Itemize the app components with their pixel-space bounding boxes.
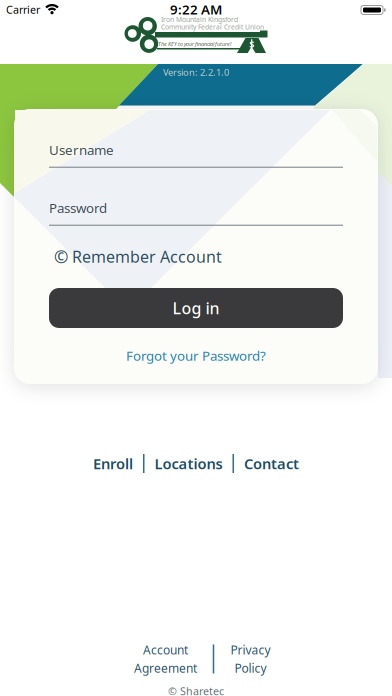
staticText: Iron Mountain Kingsford (161, 15, 238, 24)
button[interactable]: © (54, 245, 222, 268)
staticText: S (249, 38, 254, 50)
button[interactable]: Locations (154, 454, 222, 473)
staticText: Log in (172, 297, 219, 319)
button[interactable]: Account Agreement (134, 642, 197, 676)
staticText: Account Agreement (134, 642, 197, 676)
staticText: Locations (154, 454, 222, 473)
staticText: Community Federal Credit Union (161, 22, 264, 31)
staticText: 9:22 AM (170, 0, 222, 18)
button[interactable]: Enroll (93, 454, 133, 473)
staticText: Username (49, 141, 114, 159)
staticText: Carrier (6, 2, 40, 17)
staticText: Version: 2.2.1.0 (163, 66, 229, 78)
staticText: Password (49, 199, 107, 217)
staticText: © Sharetec (168, 684, 224, 696)
staticText: Contact (244, 454, 299, 473)
button[interactable]: Log in (49, 288, 343, 328)
button[interactable]: Password (49, 199, 343, 226)
button[interactable]: Forgot your Password? (126, 347, 266, 364)
button[interactable]: Contact (244, 454, 299, 473)
staticText: Remember Account (72, 246, 222, 267)
staticText: The KEY to your financial future! (158, 40, 231, 48)
staticText: Enroll (93, 454, 133, 473)
staticText: © (54, 245, 68, 268)
staticText: Forgot your Password? (126, 347, 266, 364)
button[interactable]: Privacy Policy (230, 642, 270, 676)
staticText: Privacy Policy (230, 642, 270, 676)
button[interactable]: Username (49, 141, 343, 168)
